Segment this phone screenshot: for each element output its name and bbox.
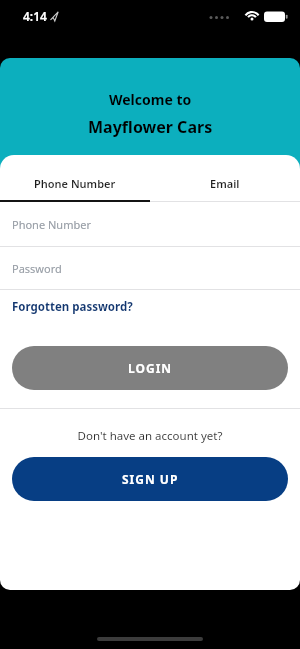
staticText: Phone Number — [12, 217, 91, 232]
button[interactable]: Forgotten password? — [12, 299, 133, 315]
staticText: Mayflower Cars — [88, 116, 213, 138]
staticText: Password — [12, 261, 62, 276]
staticText: Email — [210, 176, 240, 191]
button[interactable]: Phone Number — [0, 202, 300, 247]
button[interactable]: SIGN UP — [12, 457, 288, 501]
button[interactable]: Phone Number — [0, 155, 150, 200]
button[interactable]: LOGIN — [12, 346, 288, 390]
staticText: 4:14 — [23, 8, 47, 24]
staticText: LOGIN — [128, 360, 173, 376]
staticText: SIGN UP — [122, 471, 179, 487]
staticText: Don't have an account yet? — [0, 428, 300, 444]
button[interactable]: Email — [150, 155, 300, 200]
staticText: Phone Number — [34, 176, 116, 191]
button[interactable]: Password — [0, 247, 300, 290]
staticText: Welcome to — [109, 90, 192, 109]
